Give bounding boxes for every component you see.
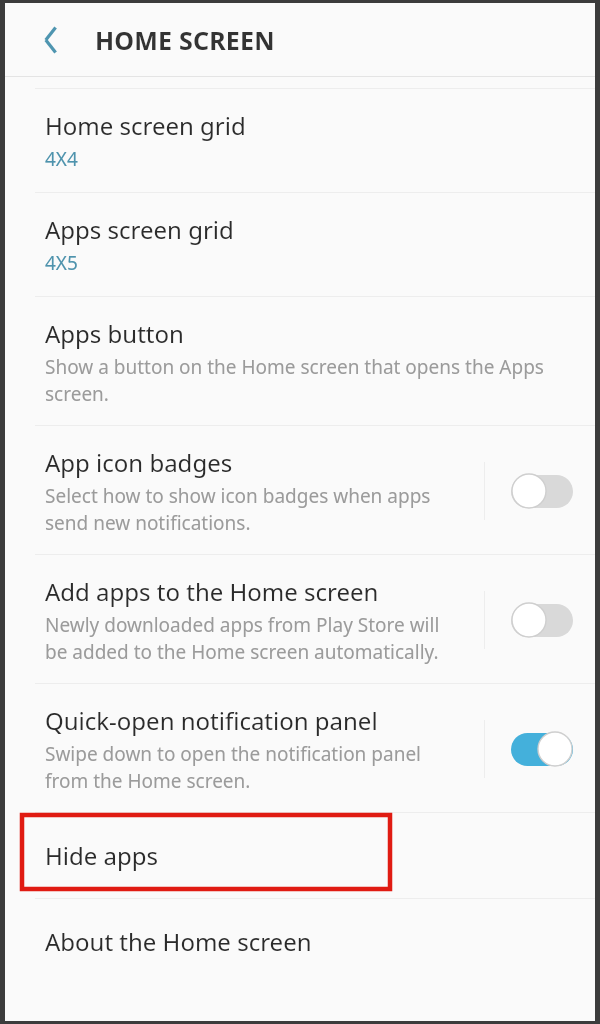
button[interactable]: Apps screen grid — [5, 193, 595, 296]
button[interactable]: Add apps to the Home screen — [5, 555, 595, 683]
button[interactable]: Apps button — [5, 297, 595, 425]
button[interactable]: Hide apps — [5, 813, 595, 898]
button[interactable]: Toggle on — [511, 731, 573, 767]
staticText: HOME SCREEN — [95, 23, 275, 57]
staticText: Add apps to the Home screen — [45, 575, 379, 608]
staticText: 4X4 — [45, 146, 78, 172]
staticText: Show a button on the Home screen that op… — [45, 354, 547, 407]
staticText: Quick-open notification panel — [45, 704, 378, 737]
button[interactable]: Back — [23, 11, 81, 69]
staticText: Home screen grid — [45, 109, 246, 142]
button[interactable]: Toggle off — [511, 602, 573, 638]
staticText: App icon badges — [45, 446, 233, 479]
staticText: Select how to show icon badges when apps… — [45, 483, 458, 536]
button[interactable]: Home screen grid — [5, 89, 595, 192]
staticText: Apps button — [45, 317, 184, 350]
button[interactable]: Toggle off — [511, 473, 573, 509]
staticText: 4X5 — [45, 250, 78, 276]
staticText: Apps screen grid — [45, 213, 234, 246]
staticText: About the Home screen — [45, 925, 312, 958]
button[interactable]: Quick-open notification panel — [5, 684, 595, 812]
staticText: Hide apps — [45, 839, 158, 872]
button[interactable]: App icon badges — [5, 426, 595, 554]
staticText: Newly downloaded apps from Play Store wi… — [45, 612, 458, 665]
staticText: Swipe down to open the notification pane… — [45, 741, 458, 794]
button[interactable]: About the Home screen — [5, 899, 595, 984]
